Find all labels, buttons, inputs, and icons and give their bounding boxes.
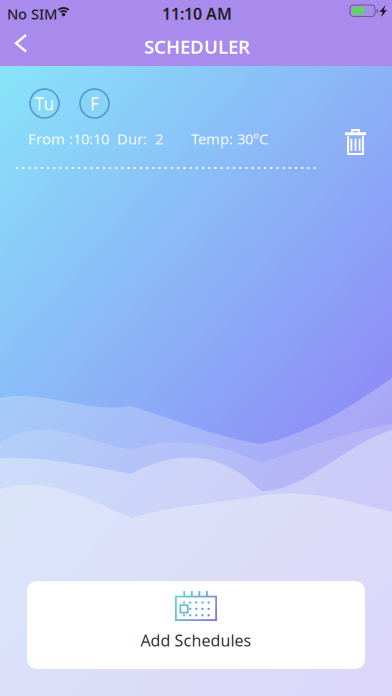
staticText: Dur: 2 [117,129,163,148]
staticText: Tu [34,92,54,115]
staticText: Temp: 30°C [191,129,268,148]
button[interactable]: Delete schedule [336,120,375,164]
staticText: F [90,92,99,115]
staticText: SCHEDULER [144,34,250,59]
button[interactable]: Add Schedules [27,581,365,669]
staticText: From :10:10 [28,129,109,148]
staticText: 11:10 AM [162,3,232,24]
staticText: Add Schedules [140,630,251,651]
button[interactable]: Back [0,22,44,64]
staticText: No SIM [7,4,57,23]
